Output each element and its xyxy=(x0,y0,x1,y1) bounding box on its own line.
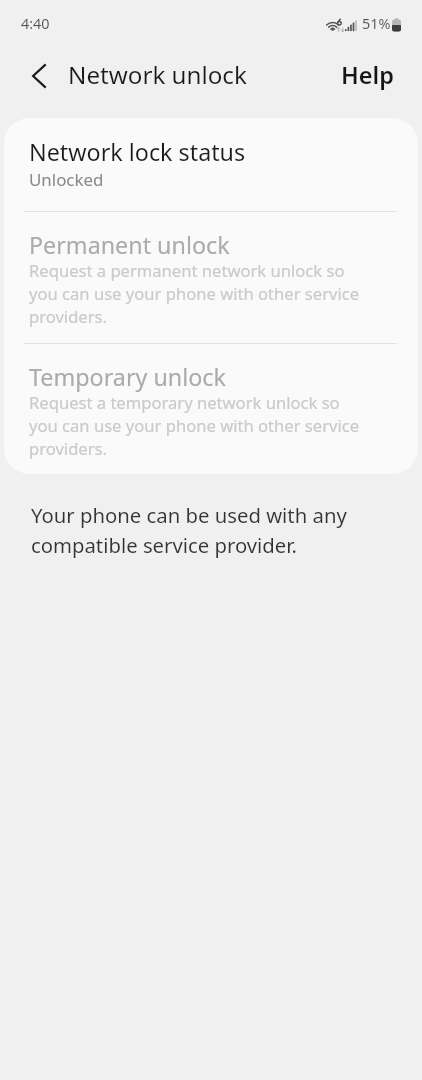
button[interactable]: Navigate up xyxy=(0,54,68,98)
staticText: 51% xyxy=(362,14,391,34)
staticText: Request a temporary network unlock so yo… xyxy=(29,391,365,460)
staticText: Help xyxy=(341,62,394,90)
staticText: Temporary unlock xyxy=(29,367,226,391)
button[interactable]: Permanent unlock xyxy=(4,212,418,343)
staticText: Unlocked xyxy=(29,167,104,191)
staticText: Network unlock xyxy=(68,62,247,90)
staticText: Permanent unlock xyxy=(29,235,230,259)
staticText: Network lock status xyxy=(29,141,246,167)
button[interactable]: Network lock status xyxy=(4,118,418,211)
staticText: Your phone can be used with any compatib… xyxy=(31,499,376,559)
button[interactable]: Help xyxy=(313,54,422,98)
staticText: Request a permanent network unlock so yo… xyxy=(29,259,365,328)
button[interactable]: Temporary unlock xyxy=(4,344,418,474)
staticText: 4:40 xyxy=(21,14,50,34)
